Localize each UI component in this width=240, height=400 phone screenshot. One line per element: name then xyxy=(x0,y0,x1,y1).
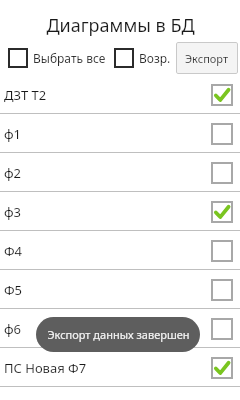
button[interactable]: ПС Новая Ф7 xyxy=(0,348,240,387)
staticText: ф2 xyxy=(4,164,211,182)
staticText: Возр. xyxy=(139,50,171,66)
staticText: Экспорт xyxy=(185,51,229,66)
staticText: ф6 xyxy=(4,320,211,338)
staticText: ДЗТ Т2 xyxy=(4,86,211,104)
button[interactable]: Ф5 xyxy=(0,270,240,309)
button[interactable]: ф1 xyxy=(0,114,240,153)
button[interactable]: Возр. xyxy=(114,48,171,68)
staticText: ф3 xyxy=(4,203,211,221)
button[interactable]: ф6 xyxy=(0,309,240,348)
staticText: Выбрать все xyxy=(33,50,106,66)
staticText: Ф5 xyxy=(4,281,211,299)
staticText: Экспорт данных завершен xyxy=(47,327,190,342)
button[interactable]: Выбрать все xyxy=(8,48,106,68)
staticText: ф1 xyxy=(4,125,211,143)
button[interactable]: Экспорт xyxy=(176,42,238,74)
staticText: Ф4 xyxy=(4,242,211,260)
button[interactable]: Ф4 xyxy=(0,231,240,270)
button[interactable]: ф3 xyxy=(0,192,240,231)
button[interactable]: ДЗТ Т2 xyxy=(0,75,240,114)
staticText: Диаграммы в БД xyxy=(46,13,195,38)
button[interactable]: ф2 xyxy=(0,153,240,192)
staticText: ПС Новая Ф7 xyxy=(4,359,211,377)
